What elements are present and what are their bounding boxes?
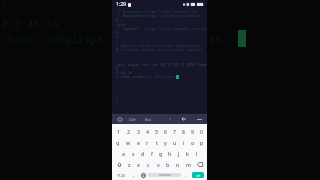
button[interactable]: Shift — [113, 160, 125, 169]
staticText: g — [159, 150, 163, 157]
staticText: , — [133, 172, 135, 179]
button[interactable]: Space — [148, 173, 181, 177]
staticText: https://landscape.example.c — [145, 13, 205, 18]
button[interactable]: o — [188, 137, 197, 148]
staticText: 0 — [200, 128, 203, 135]
button[interactable]: 7 — [170, 126, 179, 137]
staticText: Esc — [145, 117, 152, 122]
button[interactable]: m — [183, 159, 193, 170]
button[interactable]: . — [181, 170, 190, 180]
staticText: l — [196, 150, 198, 157]
staticText: se - — [209, 31, 236, 46]
staticText: 0 of these updates are security updates. — [116, 47, 205, 52]
staticText: f — [151, 150, 153, 157]
staticText: m — [186, 161, 191, 168]
button[interactable]: Hide keyboard — [196, 116, 203, 122]
staticText: n — [176, 161, 180, 168]
button[interactable]: t — [152, 137, 161, 148]
button[interactable]: b — [163, 159, 173, 170]
staticText: e — [137, 139, 140, 146]
button[interactable]: 1 — [113, 126, 123, 137]
staticText: v — [157, 161, 160, 168]
button[interactable]: g — [156, 148, 165, 159]
button[interactable]: 6 — [161, 126, 170, 137]
button[interactable]: a — [118, 148, 128, 159]
staticText: * Support: — [116, 26, 141, 31]
button[interactable]: 4 — [143, 126, 152, 137]
button[interactable]: d — [138, 148, 147, 159]
button[interactable]: i — [179, 137, 188, 148]
staticText: h — [168, 150, 172, 157]
button[interactable]: z — [125, 159, 134, 170]
button[interactable]: ?123 — [113, 170, 129, 180]
button[interactable]: e — [133, 137, 143, 148]
button[interactable]: q — [113, 137, 123, 148]
staticText: p — [200, 139, 204, 146]
button[interactable]: n — [173, 159, 183, 170]
button[interactable]: r — [143, 137, 152, 148]
button[interactable]: k — [183, 148, 192, 159]
staticText: o — [191, 139, 195, 146]
staticText: $ cd /d — [116, 70, 132, 75]
staticText: a — [122, 150, 125, 157]
button[interactable]: Back — [180, 116, 187, 122]
button[interactable]: Ctrl — [129, 117, 136, 122]
staticText: c — [147, 161, 150, 168]
button[interactable]: 8 — [179, 126, 188, 137]
button[interactable]: l — [192, 148, 201, 159]
staticText: 1:29 — [116, 1, 126, 8]
staticText: b — [166, 161, 170, 168]
staticText: 6 — [164, 128, 167, 135]
button[interactable]: h — [165, 148, 174, 159]
staticText: q — [116, 139, 120, 146]
staticText: compose — [132, 74, 148, 79]
button[interactable]: , — [129, 170, 139, 180]
button[interactable]: w — [123, 137, 133, 148]
button[interactable]: More options — [168, 117, 172, 121]
staticText: * Management: — [116, 13, 147, 18]
staticText: $ — [116, 66, 119, 71]
staticText: 5 — [155, 128, 158, 135]
button[interactable]: x — [134, 159, 143, 170]
button[interactable]: Enter — [192, 172, 204, 178]
button[interactable]: j — [174, 148, 183, 159]
staticText: 2 — [127, 128, 130, 135]
button[interactable]: 0 — [197, 126, 206, 137]
staticText: https://site.example.net — [145, 9, 199, 14]
button[interactable]: v — [153, 159, 163, 170]
staticText: Ctrl — [129, 117, 136, 122]
staticText: x — [137, 161, 140, 168]
button[interactable]: 5 — [152, 126, 161, 137]
button[interactable]: 2 — [123, 126, 133, 137]
button[interactable]: c — [143, 159, 153, 170]
button[interactable]: Change language — [139, 170, 148, 180]
staticText: 7 — [173, 128, 176, 135]
staticText: . — [185, 172, 187, 179]
staticText: 2 updates can be installed immediately. — [116, 43, 203, 48]
staticText: $ — [116, 34, 119, 39]
staticText: z — [128, 161, 131, 168]
staticText: ] — [116, 97, 119, 102]
staticText: $ — [116, 30, 119, 35]
staticText: r — [146, 139, 149, 146]
button[interactable]: f — [147, 148, 156, 159]
staticText: j — [178, 150, 180, 157]
button[interactable]: y — [161, 137, 170, 148]
staticText: y — [164, 139, 167, 146]
staticText: s — [132, 150, 135, 157]
button[interactable]: Backspace — [193, 160, 206, 169]
staticText: https://chan.example.com/adv — [145, 26, 207, 31]
staticText: $ nvim — [116, 74, 132, 79]
staticText: ?123 — [117, 173, 125, 178]
staticText: 0.7:45.66 — [2, 17, 59, 31]
button[interactable]: 9 — [188, 126, 197, 137]
button[interactable]: 3 — [133, 126, 143, 137]
staticText: 8 — [182, 128, 185, 135]
button[interactable]: s — [128, 148, 138, 159]
staticText: k — [186, 150, 189, 157]
button[interactable]: Esc — [145, 117, 152, 122]
button[interactable]: p — [197, 137, 206, 148]
button[interactable]: Keyboard — [117, 117, 122, 122]
button[interactable]: u — [170, 137, 179, 148]
